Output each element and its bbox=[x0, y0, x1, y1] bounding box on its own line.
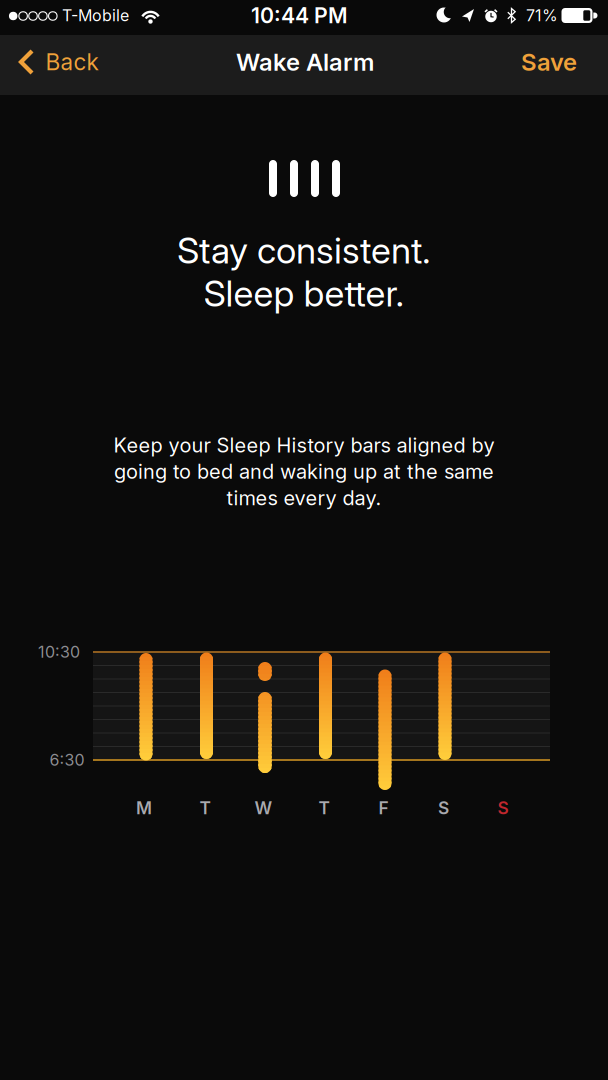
staticText: Keep your Sleep History bars aligned by bbox=[113, 433, 494, 457]
staticText: F bbox=[378, 798, 388, 818]
staticText: W bbox=[254, 798, 272, 818]
staticText: T-Mobile bbox=[62, 6, 129, 25]
staticText: going to bed and waking up at the same bbox=[114, 460, 494, 483]
button[interactable]: Save bbox=[521, 48, 577, 76]
staticText: T bbox=[318, 798, 329, 818]
staticText: T bbox=[199, 798, 210, 818]
staticText: 6:30 bbox=[49, 751, 84, 769]
staticText: Sleep better. bbox=[203, 272, 404, 315]
staticText: M bbox=[136, 798, 152, 818]
staticText: 10:30 bbox=[38, 643, 80, 661]
staticText: Back bbox=[45, 49, 98, 75]
staticText: times every day. bbox=[226, 486, 381, 510]
staticText: Wake Alarm bbox=[236, 48, 374, 76]
button[interactable]: Back bbox=[18, 49, 98, 75]
staticText: Stay consistent. bbox=[177, 229, 431, 272]
staticText: S bbox=[438, 798, 449, 818]
staticText: 10:44 PM bbox=[251, 3, 348, 28]
staticText: Save bbox=[521, 48, 577, 76]
staticText: S bbox=[497, 798, 508, 818]
staticText: 71% bbox=[526, 6, 558, 25]
